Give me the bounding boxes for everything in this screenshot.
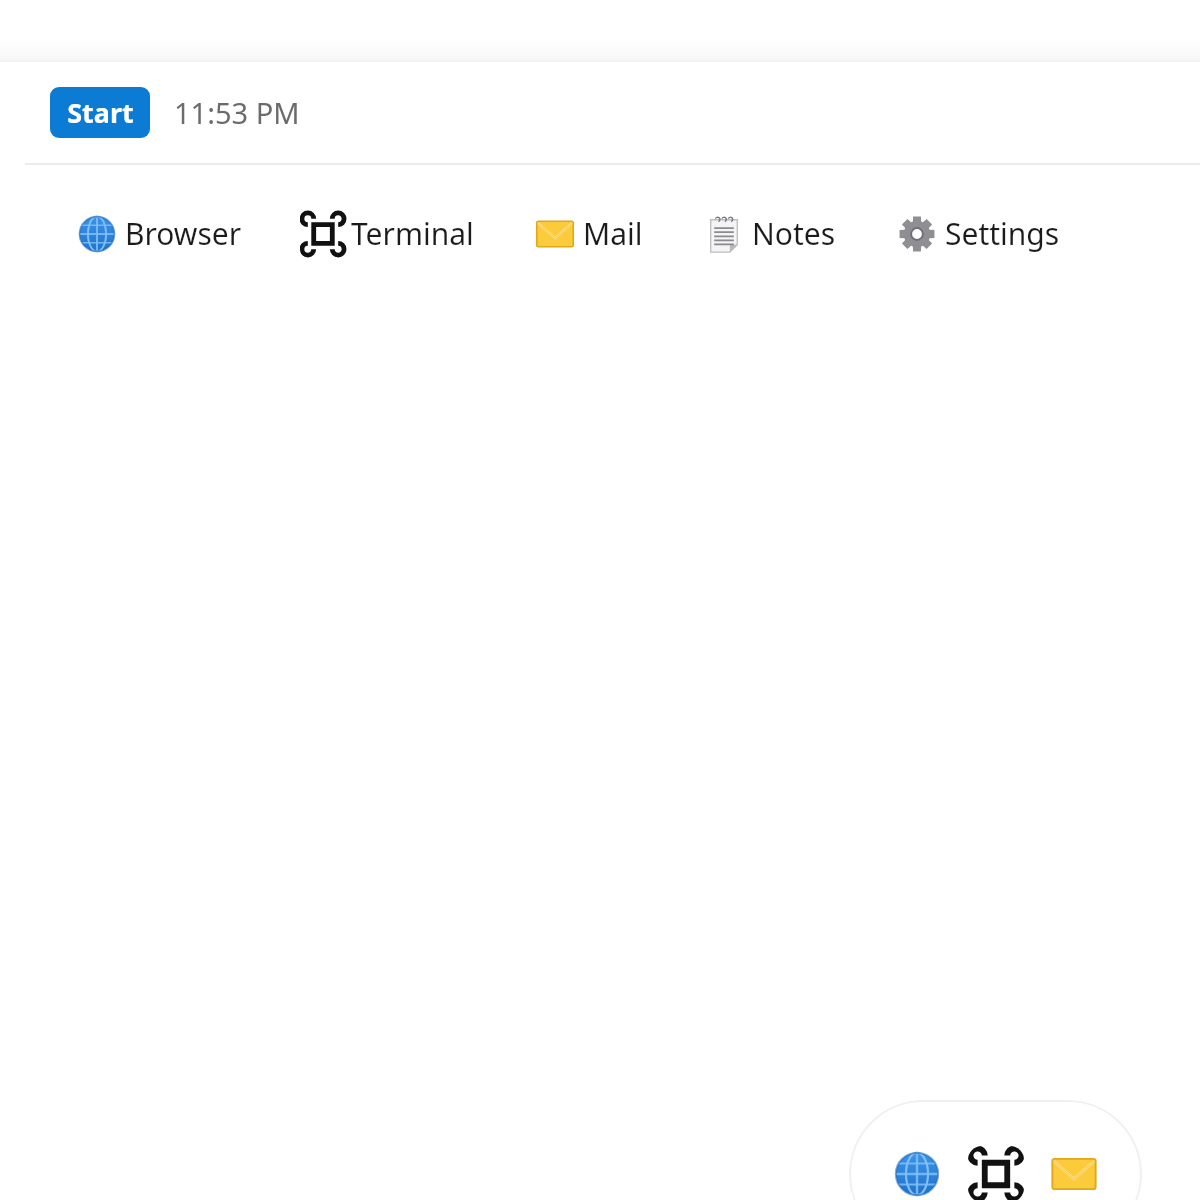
button[interactable]: Settings (894, 209, 1064, 258)
staticText: Start (67, 94, 134, 131)
button[interactable]: Browser (849, 1100, 1142, 1200)
button[interactable]: Mail (1046, 1146, 1102, 1200)
staticText: Mail (583, 213, 643, 254)
button[interactable]: Start (50, 87, 150, 138)
staticText: Terminal (351, 213, 474, 254)
button[interactable]: Terminal (300, 209, 478, 258)
button[interactable]: Terminal (968, 1146, 1024, 1200)
staticText: Notes (752, 213, 836, 254)
staticText: Settings (945, 213, 1060, 254)
button[interactable]: Mail (532, 209, 647, 258)
staticText: Browser (125, 213, 242, 254)
button[interactable]: Browser (889, 1146, 945, 1200)
button[interactable]: Notes (701, 209, 840, 258)
staticText: 11:53 PM (174, 93, 300, 132)
button[interactable]: Browser (74, 209, 246, 258)
